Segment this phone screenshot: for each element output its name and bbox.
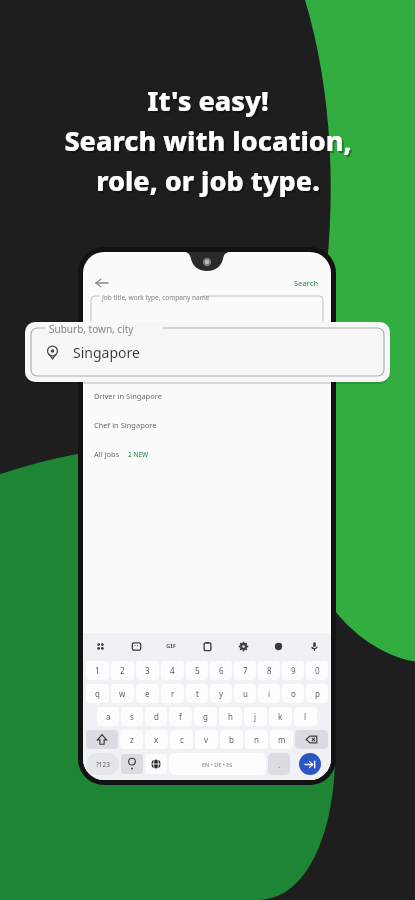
button[interactable]: d — [145, 707, 167, 726]
staticText: m — [278, 734, 286, 745]
staticText: 2 NEW — [128, 450, 149, 459]
staticText: Job title, work type, company name — [102, 293, 210, 302]
staticText: h — [228, 711, 233, 722]
staticText: Search — [294, 278, 319, 288]
button[interactable]: 1 — [86, 661, 109, 680]
button[interactable]: ?123 — [86, 753, 119, 775]
button[interactable]: Driver in Singapore — [94, 391, 320, 401]
staticText: p — [315, 688, 320, 699]
button[interactable]: z — [120, 730, 143, 749]
staticText: b — [229, 734, 234, 745]
button[interactable]: 9 — [282, 661, 304, 680]
button[interactable]: Search — [292, 276, 321, 290]
button[interactable]: Back — [93, 274, 111, 292]
staticText: t — [196, 688, 199, 699]
staticText: Search with location, — [64, 122, 352, 159]
button[interactable]: 8 — [258, 661, 280, 680]
button[interactable]: o — [282, 684, 304, 703]
button[interactable]: Job title, work type, company name — [91, 296, 323, 326]
button[interactable]: . — [268, 753, 290, 775]
button[interactable]: Apps — [89, 635, 111, 657]
staticText: 9 — [291, 665, 296, 676]
button[interactable]: GIF — [160, 635, 182, 657]
button[interactable]: Theme — [267, 635, 289, 657]
button[interactable]: c — [170, 730, 193, 749]
button[interactable]: 2 — [111, 661, 134, 680]
button[interactable]: Suburb, town, city — [31, 328, 384, 376]
button[interactable]: EN • DE • ES — [169, 753, 266, 775]
staticText: j — [254, 711, 257, 722]
button[interactable]: Next — [299, 753, 321, 775]
button[interactable]: u — [234, 684, 256, 703]
staticText: Driver in Singapore — [94, 391, 162, 401]
staticText: 8 — [267, 665, 272, 676]
staticText: r — [171, 688, 175, 699]
staticText: It's easy! — [147, 82, 269, 119]
button[interactable]: l — [294, 707, 317, 726]
staticText: role, or job type. — [96, 162, 320, 199]
button[interactable]: f — [169, 707, 192, 726]
button[interactable]: e — [136, 684, 159, 703]
staticText: 6 — [219, 665, 224, 676]
staticText: n — [254, 734, 259, 745]
button[interactable]: h — [219, 707, 242, 726]
staticText: w — [119, 688, 126, 699]
staticText: d — [154, 711, 159, 722]
button[interactable]: t — [186, 684, 208, 703]
button[interactable]: 3 — [136, 661, 159, 680]
button[interactable]: Chef in Singapore — [94, 420, 320, 430]
staticText: 2 — [120, 665, 125, 676]
button[interactable]: 6 — [210, 661, 232, 680]
staticText: 4 — [170, 665, 175, 676]
button[interactable]: All jobs — [94, 449, 320, 459]
button[interactable]: w — [111, 684, 134, 703]
button[interactable]: Settings — [232, 635, 254, 657]
button[interactable]: p — [306, 684, 328, 703]
button[interactable]: i — [258, 684, 280, 703]
button[interactable]: r — [161, 684, 184, 703]
button[interactable]: Emoji — [121, 754, 143, 774]
button[interactable]: Clipboard — [196, 635, 218, 657]
button[interactable]: Voice input — [303, 635, 325, 657]
button[interactable]: 4 — [161, 661, 184, 680]
staticText: c — [180, 734, 184, 745]
button[interactable]: j — [244, 707, 267, 726]
button[interactable]: s — [121, 707, 143, 726]
staticText: role, or job type. — [98, 164, 322, 201]
button[interactable]: g — [194, 707, 217, 726]
button[interactable]: q — [86, 684, 109, 703]
staticText: All jobs — [94, 449, 120, 459]
staticText: q — [95, 688, 100, 699]
button[interactable]: Stickers — [125, 635, 147, 657]
staticText: . — [278, 759, 281, 770]
button[interactable]: y — [210, 684, 232, 703]
staticText: Chef in Singapore — [94, 420, 157, 430]
button[interactable]: b — [220, 730, 243, 749]
button[interactable]: k — [269, 707, 292, 726]
staticText: 7 — [243, 665, 248, 676]
staticText: ?123 — [96, 760, 110, 769]
staticText: x — [154, 734, 159, 745]
staticText: Suburb, town, city — [49, 322, 134, 336]
staticText: l — [304, 711, 307, 722]
staticText: u — [243, 688, 248, 699]
staticText: y — [219, 688, 224, 699]
staticText: s — [130, 711, 134, 722]
button[interactable]: 0 — [306, 661, 328, 680]
button[interactable]: Language — [145, 754, 167, 774]
button[interactable]: 7 — [234, 661, 256, 680]
button[interactable]: x — [145, 730, 168, 749]
button[interactable]: m — [270, 730, 293, 749]
button[interactable]: v — [195, 730, 218, 749]
staticText: v — [204, 734, 209, 745]
button[interactable]: Shift — [86, 730, 118, 749]
button[interactable]: 5 — [186, 661, 208, 680]
staticText: 0 — [315, 665, 320, 676]
button[interactable]: a — [97, 707, 119, 726]
staticText: z — [130, 734, 134, 745]
button[interactable]: Backspace — [295, 730, 328, 749]
staticText: a — [106, 711, 111, 722]
staticText: o — [291, 688, 296, 699]
button[interactable]: n — [245, 730, 268, 749]
